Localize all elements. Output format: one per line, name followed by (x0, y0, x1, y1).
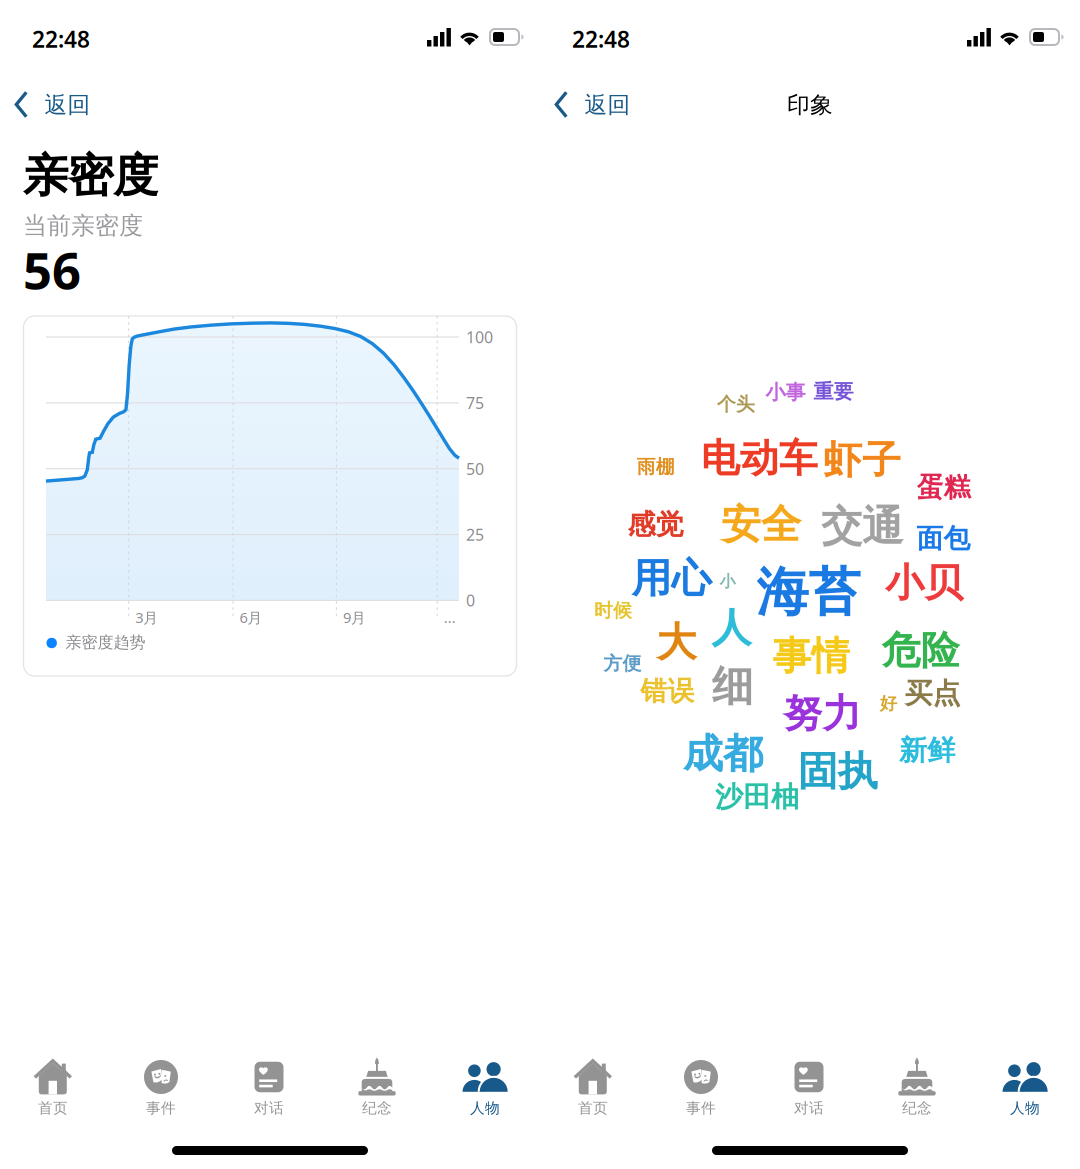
staticText: 虾子 (823, 436, 901, 484)
button[interactable]: 事件 (107, 1050, 215, 1126)
staticText: 海苔 (756, 561, 860, 624)
staticText: 返回 (44, 91, 90, 119)
staticText: 方便 (603, 652, 641, 675)
staticText: 0 (466, 590, 475, 611)
staticText: 成都 (683, 729, 763, 778)
staticText: 小事 (765, 380, 805, 405)
staticText: 人物 (1010, 1099, 1040, 1117)
staticText: 3月 (135, 608, 158, 627)
button[interactable]: 事件 (647, 1050, 755, 1126)
staticText: 首页 (578, 1099, 608, 1117)
staticText: 小 (719, 571, 735, 591)
staticText: 亲密度 (23, 148, 158, 204)
staticText: 努力 (783, 690, 861, 737)
staticText: ... (444, 608, 456, 627)
staticText: 错误 (640, 675, 694, 707)
staticText: 电动车 (701, 435, 818, 482)
staticText: 时候 (594, 599, 632, 622)
staticText: 重要 (813, 379, 853, 404)
staticText: 感觉 (627, 508, 683, 542)
staticText: 6月 (239, 608, 262, 627)
button[interactable]: 首页 (539, 1050, 647, 1126)
staticText: 面包 (916, 522, 970, 555)
staticText: 用心 (631, 554, 711, 603)
staticText: 事情 (772, 632, 850, 680)
button[interactable]: 人物 (971, 1050, 1079, 1126)
staticText: 纪念 (362, 1099, 392, 1117)
button[interactable]: 人物 (431, 1050, 539, 1126)
staticText: 雨棚 (637, 455, 675, 478)
staticText: 对话 (254, 1099, 284, 1117)
staticText: 个头 (717, 393, 755, 416)
staticText: 人 (712, 603, 752, 652)
staticText: 75 (466, 392, 484, 413)
staticText: 56 (23, 236, 81, 303)
staticText: 50 (466, 458, 484, 479)
staticText: 安全 (721, 500, 801, 549)
staticText: 小贝 (885, 559, 963, 607)
staticText: 沙田柚 (715, 780, 799, 814)
staticText: 蛋糕 (917, 471, 971, 504)
button[interactable]: 对话 (755, 1050, 863, 1126)
staticText: 纪念 (902, 1099, 932, 1117)
staticText: 大 (656, 618, 696, 667)
staticText: 细 (712, 661, 753, 712)
staticText: 固执 (798, 747, 878, 796)
button[interactable]: 首页 (0, 1050, 107, 1126)
staticText: 首页 (38, 1099, 68, 1117)
staticText: 当前亲密度 (23, 211, 143, 240)
button[interactable]: 对话 (215, 1050, 323, 1126)
staticText: 人物 (470, 1099, 500, 1117)
staticText: 买点 (904, 676, 960, 711)
staticText: 事件 (686, 1099, 716, 1117)
staticText: 9月 (343, 608, 366, 627)
staticText: 对话 (794, 1099, 824, 1117)
staticText: 22:48 (572, 24, 630, 54)
staticText: 100 (466, 326, 493, 348)
staticText: 印象 (787, 91, 833, 119)
staticText: 事件 (146, 1099, 176, 1117)
staticText: 25 (466, 524, 484, 545)
button[interactable]: 返回 (540, 77, 644, 131)
button[interactable]: 返回 (0, 77, 104, 131)
staticText: 亲密度趋势 (65, 632, 145, 652)
staticText: 危险 (882, 627, 960, 674)
staticText: 交通 (821, 501, 903, 552)
button[interactable]: 纪念 (323, 1050, 431, 1126)
staticText: 22:48 (32, 24, 90, 54)
staticText: 好 (880, 693, 897, 714)
staticText: 新鲜 (899, 733, 955, 768)
button[interactable]: 纪念 (863, 1050, 971, 1126)
staticText: 返回 (584, 91, 630, 119)
